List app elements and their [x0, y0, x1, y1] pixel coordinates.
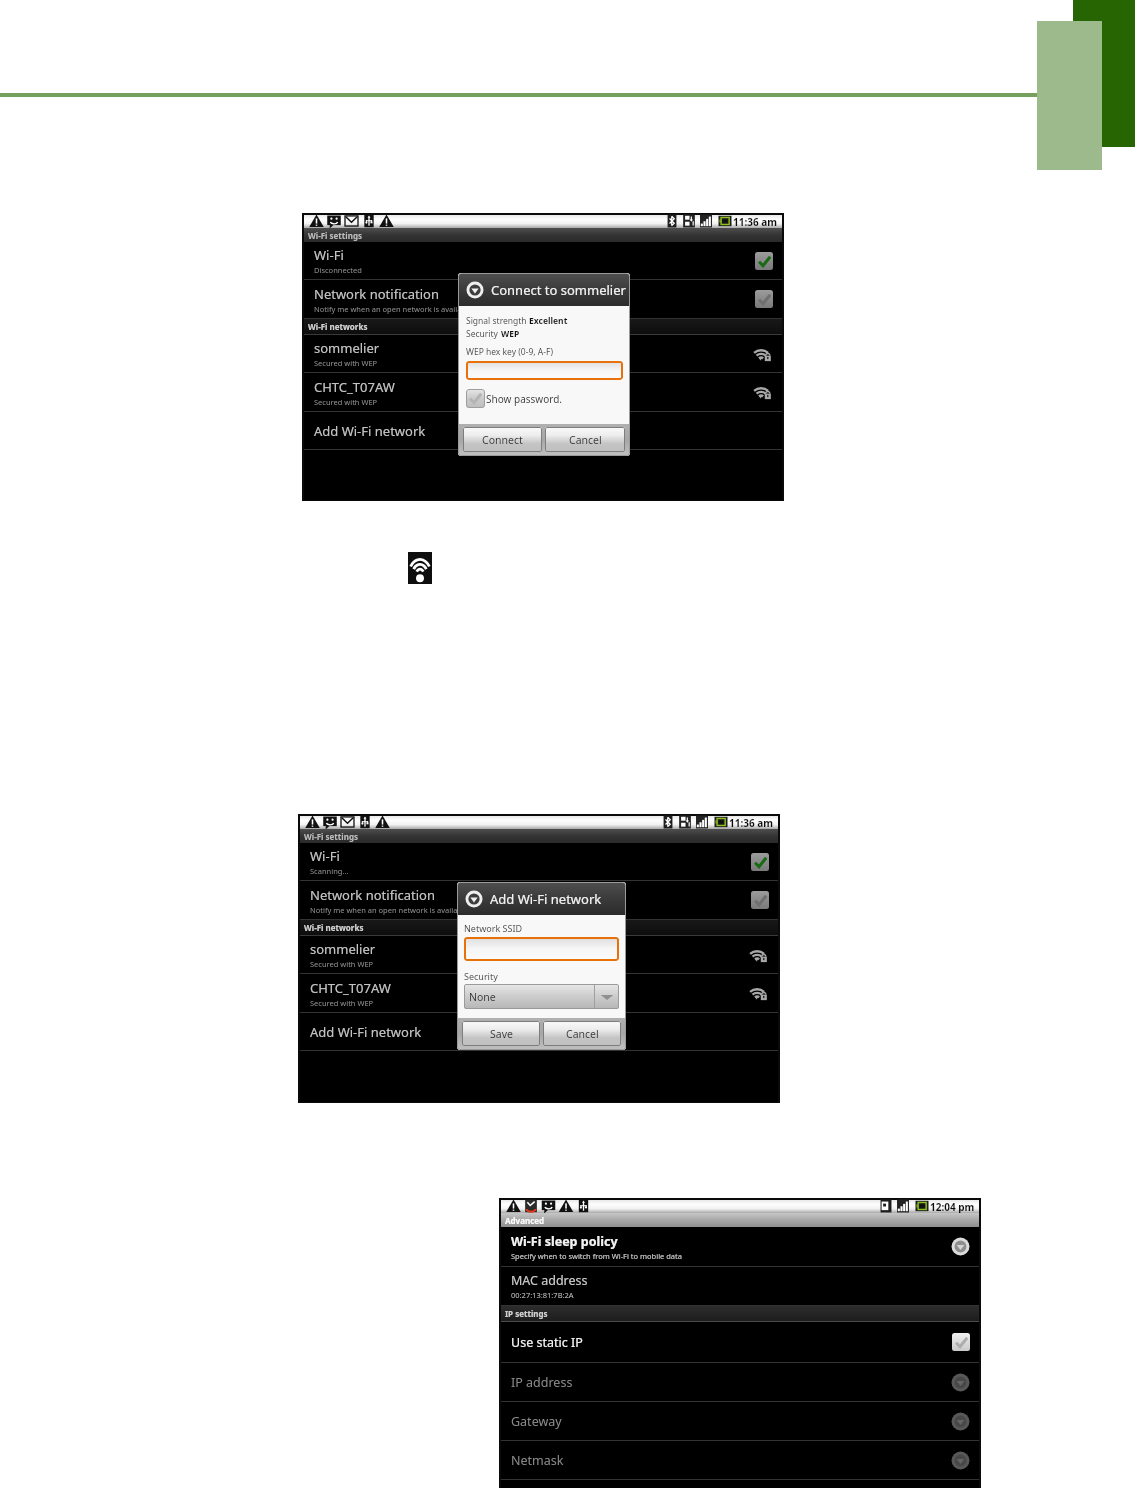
staticText: Notify me when an open network is availa…: [314, 304, 473, 314]
staticText: Add Wi-Fi network: [314, 422, 426, 440]
button[interactable]: Open: [951, 1373, 970, 1392]
button[interactable]: CHTC_T07AW: [304, 373, 782, 411]
button[interactable]: IP address: [501, 1363, 979, 1401]
button[interactable]: Toggle: [952, 1333, 970, 1351]
button[interactable]: Open: [951, 1451, 970, 1470]
staticText: WEP hex key (0-9, A-F): [466, 346, 554, 358]
button[interactable]: Network notification: [300, 881, 778, 919]
staticText: Wi-Fi sleep policy: [511, 1233, 618, 1250]
staticText: Add Wi-Fi network: [310, 1023, 422, 1041]
staticText: Excellent: [529, 315, 568, 327]
button[interactable]: Expand: [465, 890, 483, 908]
staticText: Wi-Fi settings: [308, 230, 362, 241]
staticText: Wi-Fi networks: [304, 922, 364, 933]
button[interactable]: Cancel: [545, 427, 625, 452]
staticText: Disconnected: [314, 265, 362, 275]
staticText: WEP: [501, 328, 520, 340]
staticText: Cancel: [569, 433, 602, 447]
staticText: Secured with WEP: [310, 959, 374, 969]
button[interactable]: sommelier: [300, 936, 778, 973]
other: Secured network: [749, 983, 769, 1003]
button[interactable]: Add Wi-Fi network: [304, 412, 782, 449]
staticText: Network SSID: [464, 922, 523, 934]
button[interactable]: Connect: [463, 427, 542, 452]
button[interactable]: sommelier: [304, 335, 782, 372]
staticText: Add Wi-Fi network: [490, 890, 602, 908]
staticText: Connect to sommelier: [491, 281, 626, 299]
staticText: Wi-Fi: [310, 847, 340, 865]
button[interactable]: MAC address: [501, 1267, 979, 1305]
staticText: Wi-Fi networks: [308, 321, 368, 332]
staticText: MAC address: [511, 1272, 588, 1289]
button[interactable]: Toggle: [751, 853, 769, 871]
staticText: Gateway: [511, 1413, 562, 1430]
button[interactable]: Add Wi-Fi network: [300, 1013, 778, 1050]
staticText: Secured with WEP: [314, 358, 378, 368]
button[interactable]: Wi-Fi: [304, 242, 782, 279]
button[interactable]: None: [464, 984, 619, 1009]
staticText: Secured with WEP: [314, 397, 378, 407]
staticText: None: [469, 990, 594, 1004]
staticText: Use static IP: [511, 1334, 583, 1351]
staticText: Wi-Fi settings: [304, 831, 358, 842]
button[interactable]: Wi-Fi sleep policy: [501, 1227, 979, 1266]
button[interactable]: Open Wi-Fi sleep policy: [951, 1237, 970, 1256]
button[interactable]: Text field: [466, 361, 623, 380]
staticText: Notify me when an open network is availa…: [310, 905, 469, 915]
button[interactable]: Wi-Fi: [300, 843, 778, 880]
staticText: Secured with WEP: [310, 998, 374, 1008]
staticText: IP settings: [505, 1308, 548, 1319]
staticText: Signal strength: [466, 315, 529, 327]
other: Secured network: [749, 945, 769, 965]
staticText: IP address: [511, 1374, 573, 1391]
button[interactable]: Save: [462, 1021, 540, 1046]
other: Secured network: [753, 344, 773, 364]
button[interactable]: Use static IP: [501, 1322, 979, 1362]
staticText: 11:36 am: [733, 215, 778, 228]
staticText: Specify when to switch from Wi-Fi to mob…: [511, 1251, 682, 1261]
staticText: Save: [490, 1027, 513, 1041]
button[interactable]: Open: [951, 1412, 970, 1431]
staticText: Network notification: [314, 285, 439, 303]
staticText: Security: [466, 328, 501, 340]
staticText: Show password.: [486, 392, 562, 406]
button[interactable]: Toggle: [751, 891, 769, 909]
other: Secured network: [753, 382, 773, 402]
staticText: Scanning...: [310, 866, 349, 876]
button[interactable]: Expand: [466, 281, 484, 299]
button[interactable]: Netmask: [501, 1441, 979, 1479]
staticText: Netmask: [511, 1452, 564, 1469]
staticText: Cancel: [566, 1027, 599, 1041]
staticText: Connect: [482, 433, 523, 447]
button[interactable]: Toggle: [755, 290, 773, 308]
button[interactable]: Gateway: [501, 1402, 979, 1440]
button[interactable]: Network notification: [304, 280, 782, 318]
button[interactable]: Cancel: [543, 1021, 621, 1046]
staticText: sommelier: [314, 339, 380, 357]
staticText: Wi-Fi: [314, 246, 344, 264]
staticText: sommelier: [310, 940, 376, 958]
staticText: Security: [464, 970, 498, 982]
staticText: 00:27:13:81:7B:2A: [511, 1290, 574, 1300]
button[interactable]: CHTC_T07AW: [300, 974, 778, 1012]
staticText: CHTC_T07AW: [314, 378, 395, 396]
button[interactable]: Text field: [464, 937, 619, 961]
staticText: 11:36 am: [729, 816, 774, 829]
staticText: Advanced: [505, 1215, 545, 1226]
button[interactable]: Toggle: [755, 252, 773, 270]
staticText: CHTC_T07AW: [310, 979, 391, 997]
staticText: Network notification: [310, 886, 435, 904]
staticText: 12:04 pm: [930, 1200, 975, 1213]
button[interactable]: Show password: [466, 389, 485, 408]
